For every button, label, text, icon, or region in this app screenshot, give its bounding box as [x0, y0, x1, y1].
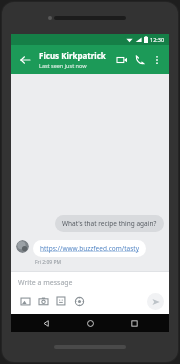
button[interactable]: Back — [16, 51, 34, 69]
staticText: 12:30 — [150, 36, 165, 43]
button[interactable]: Call — [131, 51, 149, 69]
button[interactable]: Camera — [34, 292, 52, 310]
staticText: Last seen just now — [39, 62, 87, 69]
button[interactable]: Sticker — [52, 292, 70, 310]
button[interactable]: Write a message — [18, 278, 169, 288]
button[interactable]: What's that recipe thing again? — [55, 215, 164, 232]
button[interactable]: https://www.buzzfeed.com/tasty — [33, 240, 146, 257]
staticText: Fri 2:09 PM — [35, 259, 62, 266]
staticText: Ficus Kirkpatrick — [39, 50, 106, 61]
button[interactable]: Send — [147, 293, 164, 310]
button[interactable]: Video call — [113, 51, 131, 69]
button[interactable]: Gallery — [16, 292, 34, 310]
staticText: Write a message — [18, 278, 73, 288]
button[interactable]: More options — [149, 52, 165, 68]
button[interactable]: Recents — [125, 314, 143, 332]
staticText: What's that recipe thing again? — [62, 219, 157, 228]
button[interactable]: Back — [37, 314, 55, 332]
staticText: https://www.buzzfeed.com/tasty — [40, 244, 139, 253]
button[interactable]: Home — [81, 314, 99, 332]
button[interactable]: Location — [70, 292, 88, 310]
